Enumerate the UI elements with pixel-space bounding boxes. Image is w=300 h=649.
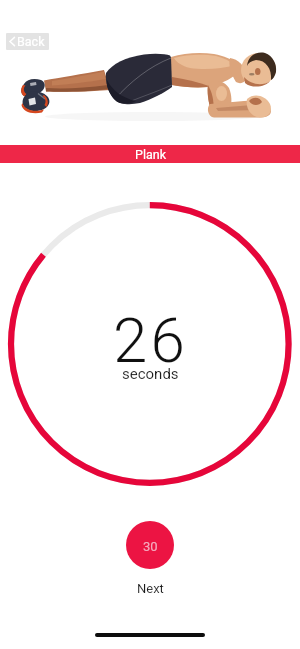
button[interactable]: Back [6,33,49,50]
staticText: Back [17,34,45,49]
staticText: 30 [143,539,158,554]
staticText: Plank [135,147,166,162]
staticText: seconds [122,365,179,383]
staticText: 26 [113,304,188,377]
button[interactable]: 30 [126,521,174,569]
staticText: Next [137,581,164,596]
